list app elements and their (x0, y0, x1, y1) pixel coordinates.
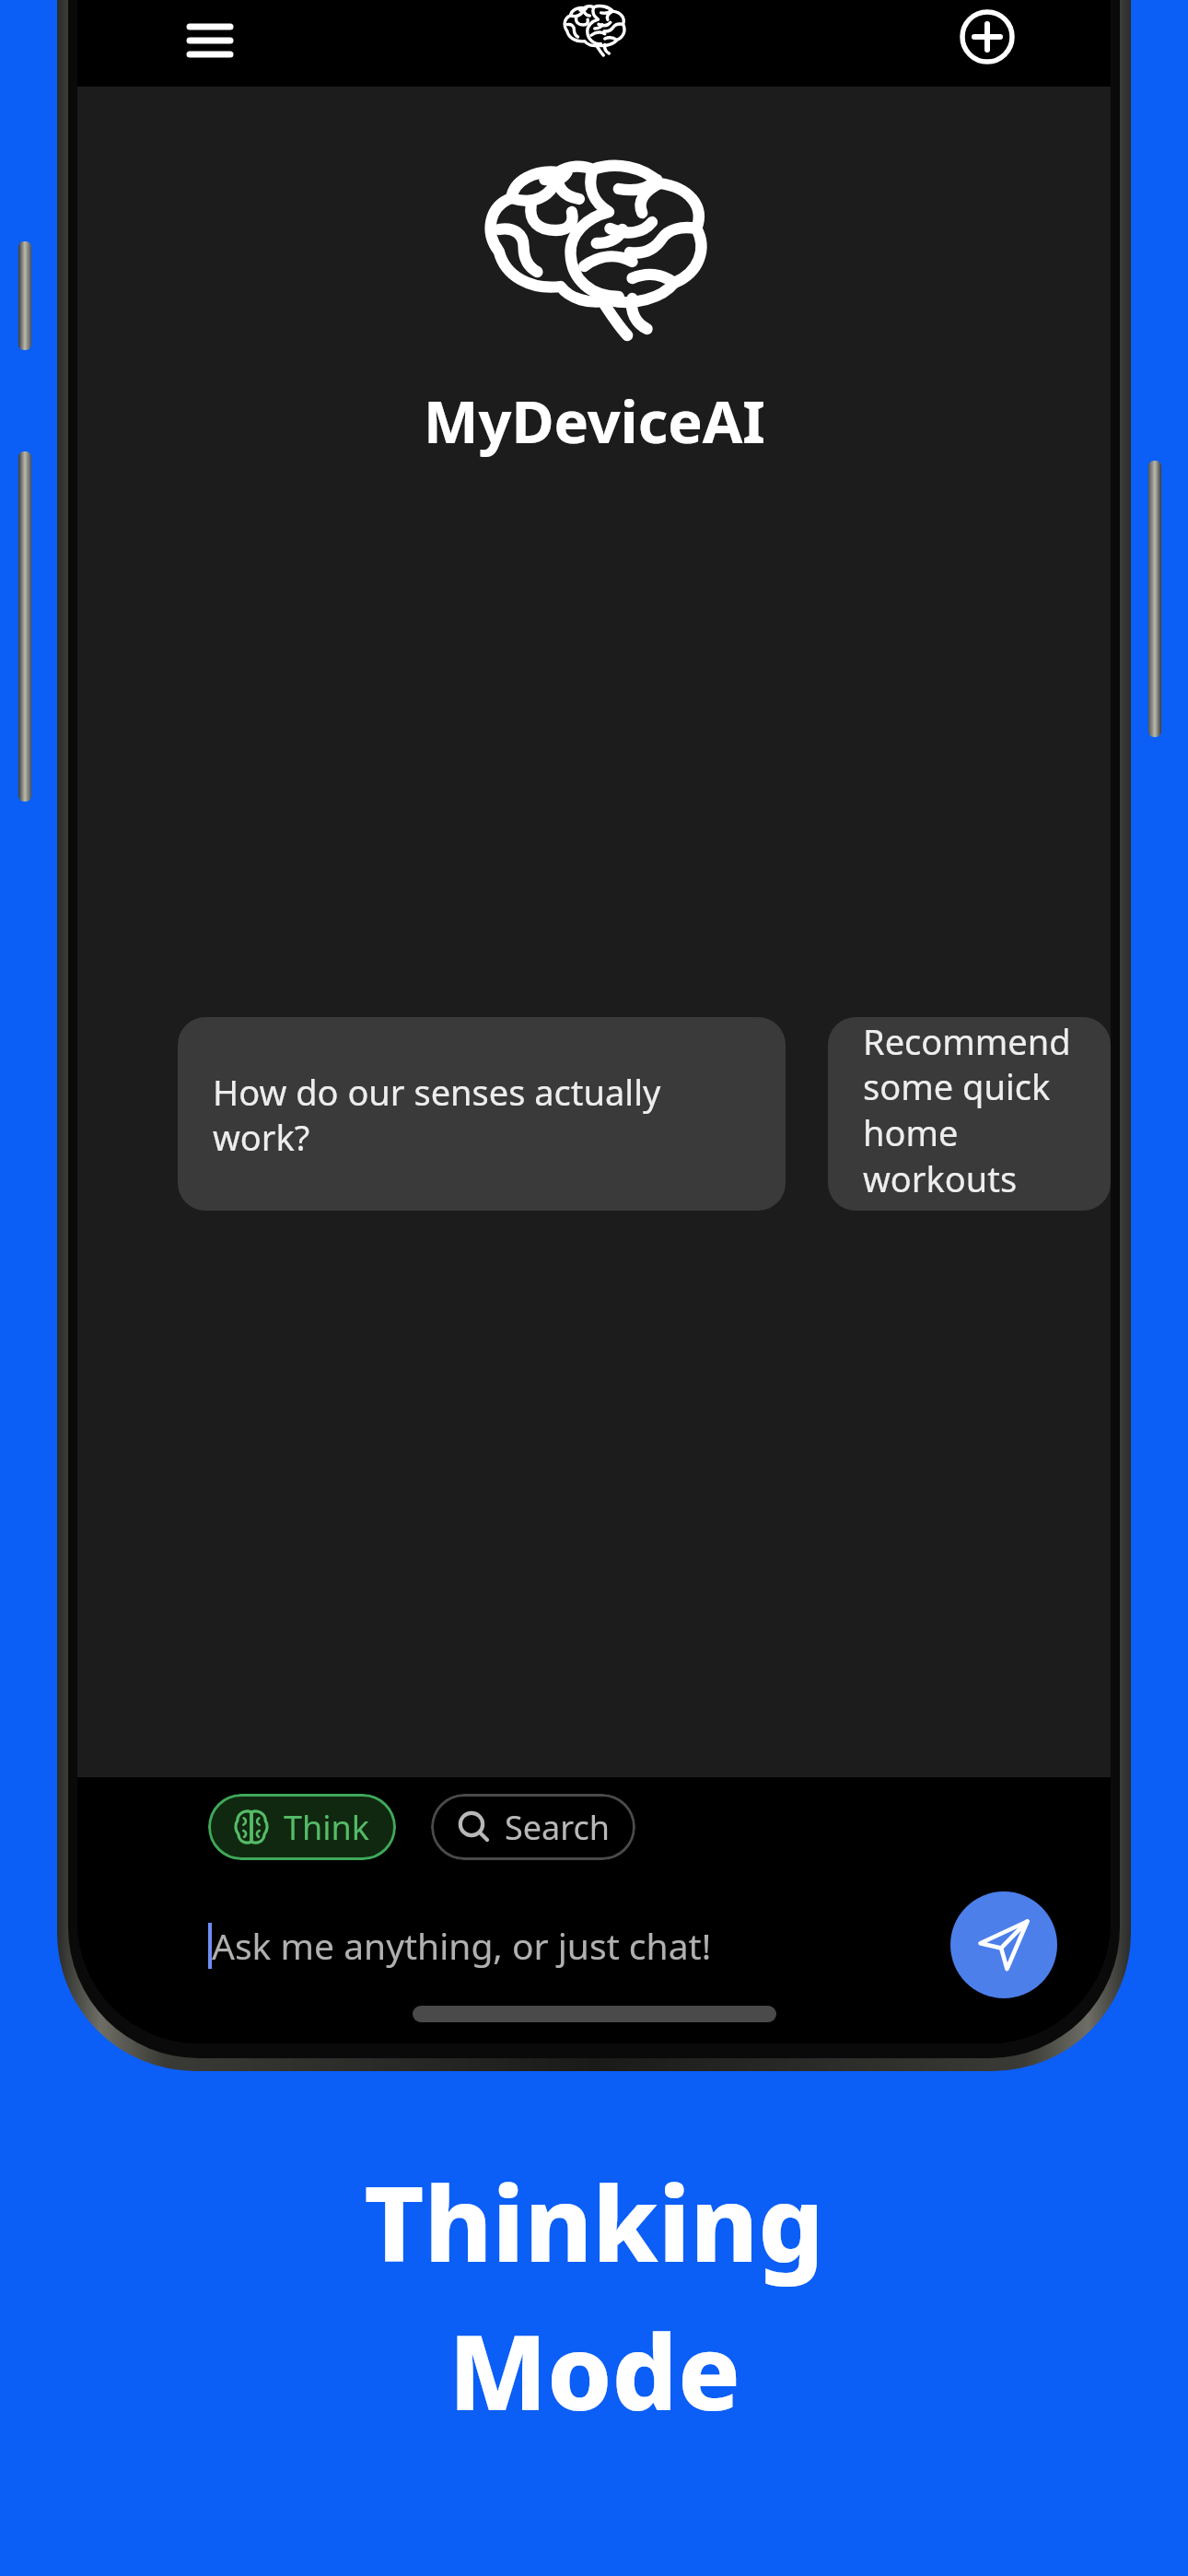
button[interactable]: How do our senses actually work? (178, 1017, 786, 1211)
button[interactable]: Recommend some quick home workouts that … (828, 1017, 1111, 1211)
button[interactable]: Menu (169, 0, 250, 81)
staticText: How do our senses actually work? (213, 1068, 751, 1161)
staticText: Think (284, 1805, 370, 1850)
button[interactable]: Send (950, 1891, 1057, 1998)
button[interactable]: Think (208, 1794, 396, 1860)
button[interactable]: Search (431, 1794, 635, 1860)
staticText: Recommend some quick home workouts that … (863, 1017, 1076, 1211)
staticText: Ask me anything, or just chat! (212, 1921, 712, 1970)
staticText: MyDeviceAI (424, 381, 765, 461)
button[interactable]: New chat (945, 0, 1030, 79)
button[interactable]: MyDeviceAI (552, 0, 636, 61)
staticText: Thinking (364, 2151, 824, 2292)
button[interactable]: Ask me anything, or just chat! (208, 1921, 950, 1970)
staticText: Mode (448, 2300, 740, 2441)
staticText: Search (505, 1805, 610, 1850)
